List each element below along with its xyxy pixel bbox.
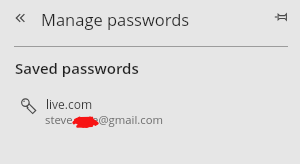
staticText: Manage passwords	[41, 8, 190, 30]
button[interactable]: Pin	[268, 3, 296, 31]
staticText: Saved passwords	[15, 58, 139, 78]
staticText: steve.rose@gmail.com	[45, 112, 163, 127]
button[interactable]: Back	[8, 4, 36, 32]
button[interactable]: live.com	[0, 92, 300, 132]
staticText: live.com	[46, 96, 93, 112]
